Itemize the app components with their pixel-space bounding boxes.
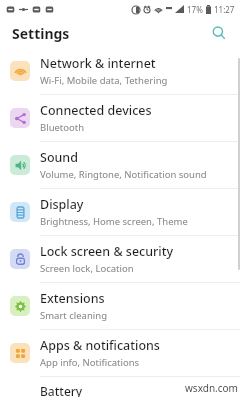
- staticText: Screen lock, Location: [40, 262, 134, 275]
- staticText: Apps & notifications: [40, 337, 160, 354]
- staticText: App info, Notifications: [40, 356, 140, 369]
- staticText: 17%: [187, 4, 203, 15]
- staticText: wsxdn.com: [185, 381, 238, 395]
- staticText: Battery: [40, 383, 83, 397]
- staticText: Settings: [12, 24, 70, 43]
- staticText: Bluetooth: [40, 121, 85, 134]
- button[interactable]: Display: [0, 189, 240, 235]
- button[interactable]: Lock screen & security: [0, 236, 240, 282]
- button[interactable]: Connected devices: [0, 95, 240, 141]
- staticText: Smart cleaning: [40, 309, 107, 322]
- staticText: Volume, Ringtone, Notification sound: [40, 168, 207, 181]
- staticText: Sound: [40, 149, 78, 166]
- button[interactable]: Network & internet: [0, 48, 240, 94]
- staticText: Brightness, Home screen, Theme: [40, 215, 188, 228]
- button[interactable]: Battery: [0, 377, 240, 397]
- staticText: Connected devices: [40, 102, 152, 119]
- staticText: Network & internet: [40, 55, 156, 72]
- button[interactable]: Apps & notifications: [0, 330, 240, 376]
- button[interactable]: Search: [208, 22, 230, 44]
- staticText: Extensions: [40, 290, 105, 307]
- button[interactable]: Extensions: [0, 283, 240, 329]
- staticText: Lock screen & security: [40, 243, 174, 260]
- staticText: 11:27: [214, 4, 235, 15]
- staticText: Wi-Fi, Mobile data, Tethering: [40, 74, 168, 87]
- staticText: Display: [40, 196, 84, 213]
- button[interactable]: Sound: [0, 142, 240, 188]
